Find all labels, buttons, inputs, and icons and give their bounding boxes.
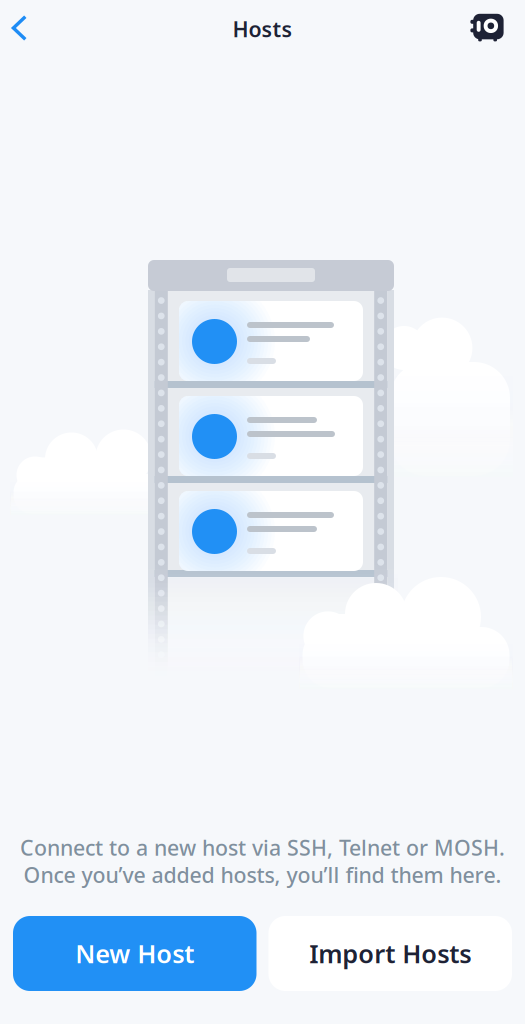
staticText: Connect to a new host via SSH, Telnet or…: [20, 833, 505, 862]
button[interactable]: Import Hosts: [268, 916, 512, 991]
button[interactable]: New Host: [13, 916, 256, 991]
staticText: Hosts: [232, 15, 292, 43]
staticText: New Host: [75, 937, 194, 970]
staticText: Once you’ve added hosts, you’ll find the…: [23, 861, 501, 889]
button[interactable]: Back: [0, 2, 44, 54]
button[interactable]: Vault: [461, 2, 513, 54]
staticText: Import Hosts: [309, 937, 471, 970]
